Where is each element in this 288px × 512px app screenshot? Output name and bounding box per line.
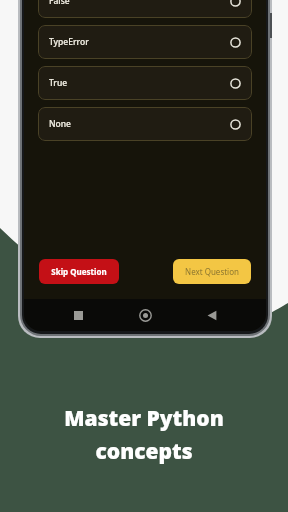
button[interactable]: TypeError xyxy=(38,25,252,59)
staticText: False xyxy=(49,0,70,7)
staticText: Next Question xyxy=(185,266,239,277)
button[interactable]: Next Question xyxy=(173,259,251,284)
staticText: Skip Question xyxy=(51,266,107,277)
button[interactable]: None xyxy=(38,107,252,141)
staticText: True xyxy=(49,77,68,89)
staticText: concepts xyxy=(95,437,193,466)
button[interactable]: Recent apps xyxy=(65,302,91,328)
button[interactable]: True xyxy=(38,66,252,100)
staticText: TypeError xyxy=(49,36,89,48)
button[interactable]: Skip Question xyxy=(39,259,119,284)
button[interactable]: Home xyxy=(132,302,158,328)
button[interactable]: False xyxy=(38,0,252,18)
button[interactable]: Back xyxy=(199,302,225,328)
staticText: Master Python xyxy=(64,404,224,433)
staticText: None xyxy=(49,118,71,130)
